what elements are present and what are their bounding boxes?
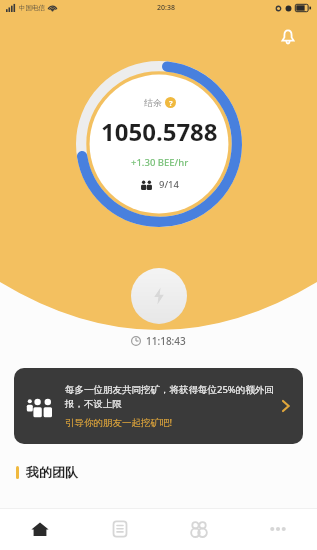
button[interactable]: 每多一位朋友共同挖矿，将获得每位25%的额外回报，不设上限 (14, 368, 303, 444)
staticText: 中国电信 (19, 4, 45, 12)
staticText: 11:18:43 (146, 334, 186, 348)
button[interactable]: Help (165, 97, 176, 108)
staticText: 1050.5788 (101, 115, 218, 148)
staticText: 我的团队 (26, 464, 78, 480)
button[interactable]: Start mining (131, 268, 187, 324)
staticText: 20:38 (157, 3, 175, 13)
staticText: +1.30 BEE/hr (131, 156, 189, 169)
button[interactable]: More (238, 508, 317, 550)
button[interactable]: Records (80, 508, 159, 550)
staticText: 每多一位朋友共同挖矿，将获得每位25%的额外回报，不设上限 (65, 383, 274, 410)
button[interactable]: Notifications (273, 22, 303, 52)
staticText: 9/14 (159, 178, 179, 191)
staticText: ? (169, 98, 173, 108)
staticText: 结余 (144, 97, 162, 108)
button[interactable]: Team (159, 508, 238, 550)
button[interactable]: Home (0, 508, 80, 550)
staticText: 引导你的朋友一起挖矿吧! (65, 416, 173, 429)
